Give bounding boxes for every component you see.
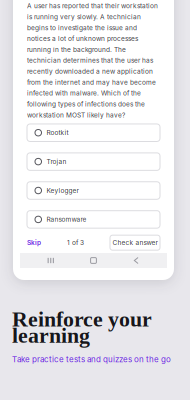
staticText: Check answer — [112, 239, 157, 247]
button[interactable]: Rootkit — [27, 124, 160, 141]
button[interactable]: Keylogger — [27, 182, 160, 199]
staticText: Take practice tests and quizzes on the g… — [12, 354, 171, 364]
button[interactable]: Trojan — [27, 153, 160, 170]
staticText: Reinforce your learning — [12, 307, 151, 347]
staticText: Trojan — [46, 158, 66, 166]
staticText: 1 of 3 — [67, 239, 84, 247]
button[interactable]: Check answer — [110, 235, 160, 250]
staticText: Rootkit — [46, 129, 68, 137]
button[interactable]: Skip — [27, 239, 41, 247]
button[interactable]: Home — [81, 253, 105, 268]
staticText: Ransomware — [46, 215, 86, 223]
button[interactable]: Recents — [39, 253, 63, 268]
button[interactable]: Ransomware — [27, 211, 160, 228]
button[interactable]: Back — [124, 253, 148, 268]
staticText: Keylogger — [46, 187, 78, 194]
staticText: A user has reported that their workstati… — [27, 2, 158, 119]
staticText: Skip — [27, 239, 41, 247]
